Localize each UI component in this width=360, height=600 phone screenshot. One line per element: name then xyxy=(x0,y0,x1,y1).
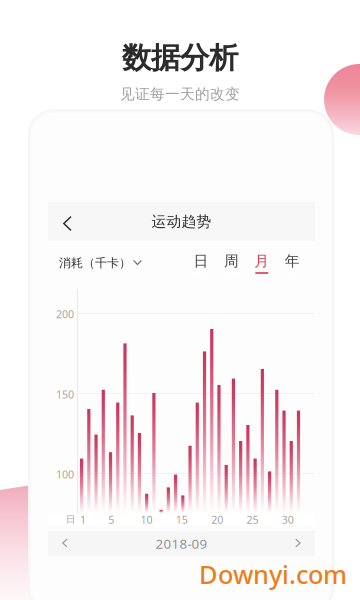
button[interactable]: 年 xyxy=(277,250,307,276)
button[interactable]: 周 xyxy=(216,250,247,276)
staticText: 20 xyxy=(211,512,223,527)
staticText: 运动趋势 xyxy=(151,212,211,230)
staticText: 100 xyxy=(56,467,74,481)
staticText: 1 xyxy=(80,512,86,527)
button[interactable]: 日 xyxy=(186,250,216,276)
button[interactable]: Back xyxy=(48,199,92,243)
staticText: 15 xyxy=(176,512,188,527)
staticText: 25 xyxy=(246,512,258,527)
staticText: 5 xyxy=(108,512,114,527)
staticText: 年 xyxy=(285,252,300,270)
staticText: 150 xyxy=(56,387,74,401)
staticText: 消耗（千卡） xyxy=(59,256,131,270)
staticText: 30 xyxy=(282,512,294,527)
button[interactable]: Previous month xyxy=(48,531,88,556)
staticText: 2018-09 xyxy=(155,535,207,552)
staticText: 日 xyxy=(66,514,75,525)
staticText: 月 xyxy=(254,252,269,270)
staticText: 数据分析 xyxy=(122,40,238,76)
staticText: 10 xyxy=(140,512,152,527)
staticText: 见证每一天的改变 xyxy=(120,85,240,103)
staticText: 200 xyxy=(56,307,74,321)
staticText: 日 xyxy=(193,252,208,270)
button[interactable]: 消耗（千卡） xyxy=(48,241,143,285)
button[interactable]: 月 xyxy=(247,250,277,276)
staticText: 周 xyxy=(224,252,239,270)
button[interactable]: Next month xyxy=(275,531,315,556)
staticText: Downyi.com xyxy=(199,557,347,591)
